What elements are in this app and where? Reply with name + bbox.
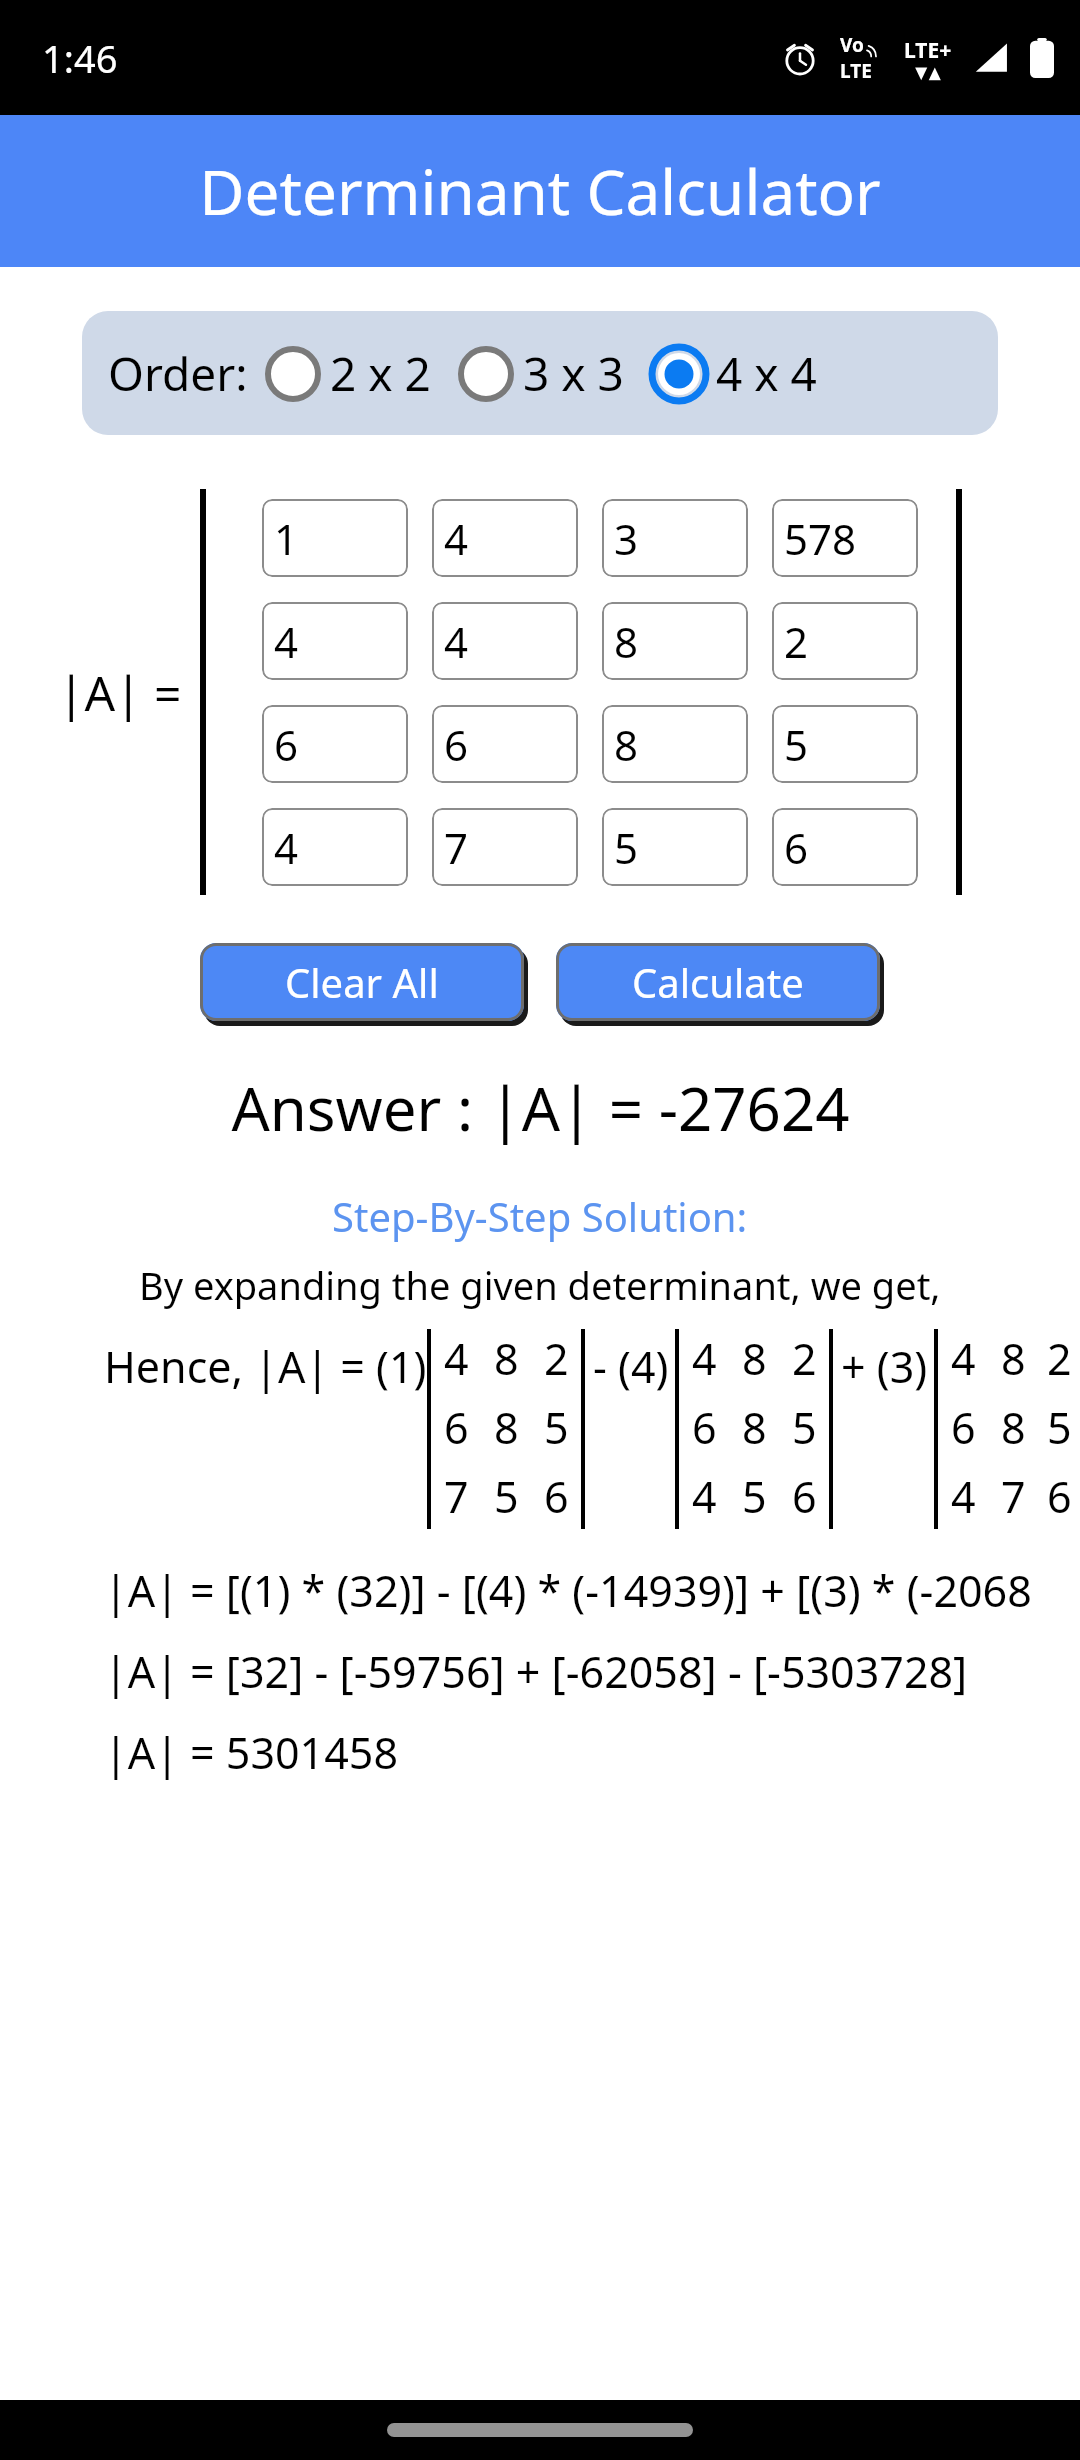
staticText: 7 (1001, 1467, 1026, 1526)
staticText: 4 (444, 510, 469, 567)
staticText: 4 (444, 1329, 469, 1388)
staticText: 5 (792, 1398, 817, 1457)
button[interactable]: 4 (432, 602, 578, 680)
staticText: |A| = (58, 660, 182, 725)
staticText: |A| = [(1) * (32)] - [(4) * (-14939)] + … (104, 1561, 1032, 1620)
staticText: 5 (1047, 1398, 1072, 1457)
staticText: 6 (951, 1398, 976, 1457)
staticText: 6 (444, 716, 469, 773)
button[interactable]: 5 (772, 705, 918, 783)
staticText: 8 (614, 716, 639, 773)
staticText: 1 (274, 510, 299, 567)
button[interactable]: 3 x 3 (455, 338, 626, 409)
button[interactable]: 578 (772, 499, 918, 577)
button[interactable]: 5 (602, 808, 748, 886)
staticText: Determinant Calculator (199, 149, 881, 233)
staticText: 2 (784, 613, 809, 670)
button[interactable]: Clear All (200, 943, 524, 1021)
staticText: 2 (1047, 1329, 1072, 1388)
button[interactable]: Step-By-Step Solution: (332, 1189, 748, 1243)
button[interactable]: 7 (432, 808, 578, 886)
staticText: LTE (840, 58, 872, 84)
button[interactable]: 4 (262, 808, 408, 886)
staticText: 6 (274, 716, 299, 773)
staticText: 5 (614, 819, 639, 876)
staticText: 3 x 3 (523, 342, 624, 405)
staticText: 8 (742, 1398, 767, 1457)
staticText: 7 (444, 1467, 469, 1526)
staticText: Order: (108, 342, 248, 405)
staticText: 5 (742, 1467, 767, 1526)
button[interactable]: 3 (602, 499, 748, 577)
button[interactable]: 4 x 4 (648, 338, 819, 409)
staticText: 2 x 2 (330, 342, 431, 405)
staticText: 8 (494, 1329, 519, 1388)
staticText: 578 (784, 510, 857, 567)
staticText: 4 (274, 819, 299, 876)
staticText: 8 (494, 1398, 519, 1457)
staticText: LTE+ (904, 36, 952, 65)
staticText: 6 (1047, 1467, 1072, 1526)
staticText: 6 (692, 1398, 717, 1457)
button[interactable]: 6 (432, 705, 578, 783)
staticText: 1:46 (42, 32, 118, 84)
staticText: Hence, |A| = (1) (104, 1337, 427, 1396)
button[interactable]: 1 (262, 499, 408, 577)
staticText: Clear All (285, 955, 439, 1009)
staticText: 8 (614, 613, 639, 670)
staticText: 2 (792, 1329, 817, 1388)
staticText: + (3) (841, 1337, 928, 1396)
staticText: Answer : |A| = -27624 (231, 1067, 850, 1149)
staticText: 4 (274, 613, 299, 670)
staticText: By expanding the given determinant, we g… (139, 1259, 941, 1311)
staticText: 4 (692, 1467, 717, 1526)
button[interactable]: Home (387, 2423, 693, 2437)
button[interactable]: 4 (262, 602, 408, 680)
staticText: Vo (840, 32, 864, 58)
staticText: 5 (784, 716, 809, 773)
button[interactable]: 8 (602, 602, 748, 680)
staticText: 8 (742, 1329, 767, 1388)
button[interactable]: 2 (772, 602, 918, 680)
staticText: |A| = [32] - [-59756] + [-62058] - [-530… (104, 1642, 968, 1701)
button[interactable]: 4 (432, 499, 578, 577)
staticText: 4 x 4 (716, 342, 817, 405)
staticText: 6 (544, 1467, 569, 1526)
staticText: 5 (494, 1467, 519, 1526)
staticText: 7 (444, 819, 469, 876)
staticText: 6 (784, 819, 809, 876)
button[interactable]: Calculate (556, 943, 880, 1021)
staticText: 5 (544, 1398, 569, 1457)
staticText: 8 (1001, 1398, 1026, 1457)
staticText: 6 (444, 1398, 469, 1457)
staticText: 4 (444, 613, 469, 670)
staticText: 6 (792, 1467, 817, 1526)
button[interactable]: 2 x 2 (262, 338, 433, 409)
staticText: Calculate (632, 955, 804, 1009)
staticText: 4 (951, 1329, 976, 1388)
button[interactable]: 6 (772, 808, 918, 886)
staticText: 8 (1001, 1329, 1026, 1388)
button[interactable]: 6 (262, 705, 408, 783)
staticText: 4 (951, 1467, 976, 1526)
staticText: 2 (544, 1329, 569, 1388)
staticText: - (4) (593, 1337, 669, 1396)
button[interactable]: 8 (602, 705, 748, 783)
staticText: 3 (614, 510, 639, 567)
staticText: 4 (692, 1329, 717, 1388)
staticText: |A| = 5301458 (104, 1723, 398, 1782)
